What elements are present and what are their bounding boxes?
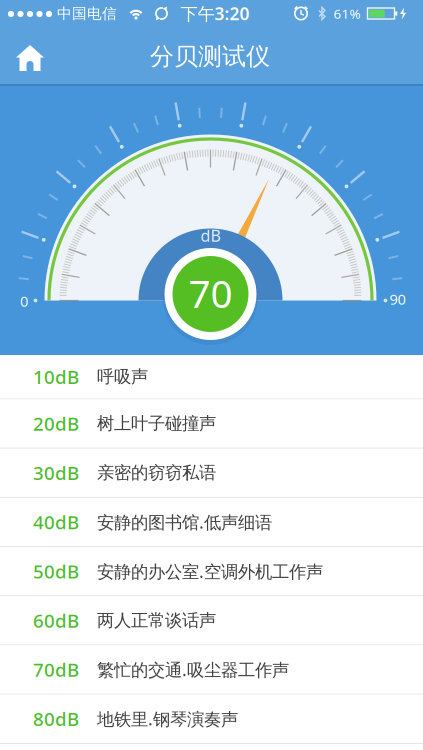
button[interactable]: 80dB bbox=[0, 695, 423, 744]
staticText: 90 bbox=[389, 289, 405, 309]
staticText: 10dB bbox=[33, 364, 79, 389]
staticText: 50dB bbox=[33, 559, 79, 584]
button[interactable]: 60dB bbox=[0, 596, 423, 645]
button[interactable]: 10dB bbox=[0, 355, 423, 399]
staticText: 亲密的窃窃私语 bbox=[97, 462, 216, 483]
staticText: 0 bbox=[20, 291, 28, 311]
staticText: 80dB bbox=[33, 706, 79, 731]
staticText: 60dB bbox=[33, 608, 79, 633]
button[interactable]: 30dB bbox=[0, 449, 423, 498]
button[interactable]: 40dB bbox=[0, 498, 423, 547]
staticText: 70 bbox=[188, 267, 232, 319]
staticText: 繁忙的交通.吸尘器工作声 bbox=[97, 658, 289, 681]
button[interactable]: Home bbox=[8, 36, 52, 80]
staticText: 呼吸声 bbox=[97, 366, 148, 387]
staticText: 下午3:20 bbox=[180, 2, 249, 25]
button[interactable]: 50dB bbox=[0, 547, 423, 596]
staticText: dB bbox=[200, 225, 220, 246]
staticText: 安静的办公室.空调外机工作声 bbox=[97, 560, 323, 583]
staticText: 地铁里.钢琴演奏声 bbox=[97, 707, 238, 730]
staticText: 两人正常谈话声 bbox=[97, 610, 216, 631]
staticText: 树上叶子碰撞声 bbox=[97, 413, 216, 434]
staticText: 40dB bbox=[33, 510, 79, 534]
staticText: 20dB bbox=[33, 411, 79, 436]
staticText: 安静的图书馆.低声细语 bbox=[97, 510, 272, 533]
button[interactable]: 70dB bbox=[0, 645, 423, 695]
staticText: 中国电信 bbox=[57, 4, 117, 22]
button[interactable]: 20dB bbox=[0, 399, 423, 449]
staticText: 分贝测试仪 bbox=[150, 42, 270, 71]
staticText: 30dB bbox=[33, 460, 79, 485]
staticText: 70dB bbox=[33, 657, 79, 682]
staticText: 61% bbox=[333, 5, 360, 22]
